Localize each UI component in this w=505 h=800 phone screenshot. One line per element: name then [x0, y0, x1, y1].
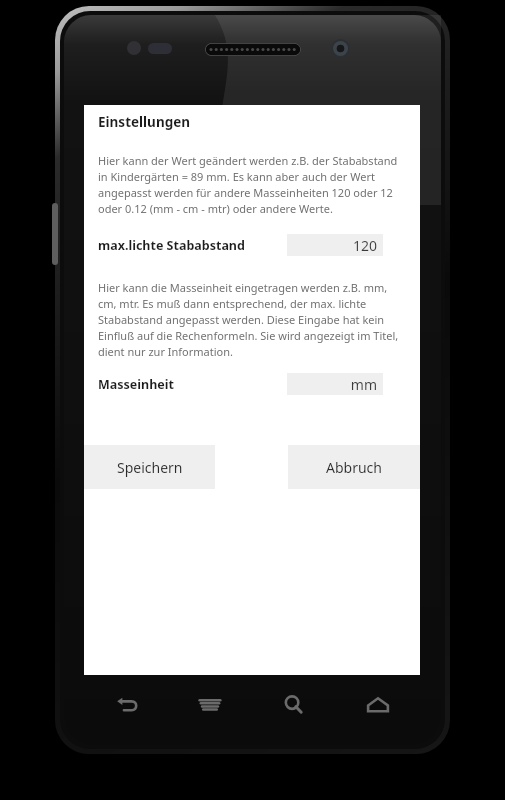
button[interactable]: Abbruch	[288, 445, 420, 489]
staticText: max.lichte Stababstand	[98, 237, 245, 254]
button[interactable]: Speichern	[84, 445, 215, 489]
staticText: Hier kann der Wert geändert werden z.B. …	[98, 153, 406, 216]
staticText: Abbruch	[326, 458, 382, 477]
button[interactable]: Back	[84, 675, 168, 735]
staticText: Speichern	[117, 458, 183, 477]
button[interactable]: Menu	[168, 675, 252, 735]
button[interactable]: Home	[336, 675, 420, 735]
staticText: Hier kann die Masseinheit eingetragen we…	[98, 280, 406, 359]
button[interactable]: 120	[287, 234, 383, 256]
staticText: Masseinheit	[98, 376, 174, 393]
staticText: Einstellungen	[98, 113, 191, 131]
staticText: 120	[352, 236, 377, 255]
button[interactable]: Search	[252, 675, 336, 735]
button[interactable]: mm	[287, 373, 383, 395]
staticText: mm	[350, 375, 377, 394]
